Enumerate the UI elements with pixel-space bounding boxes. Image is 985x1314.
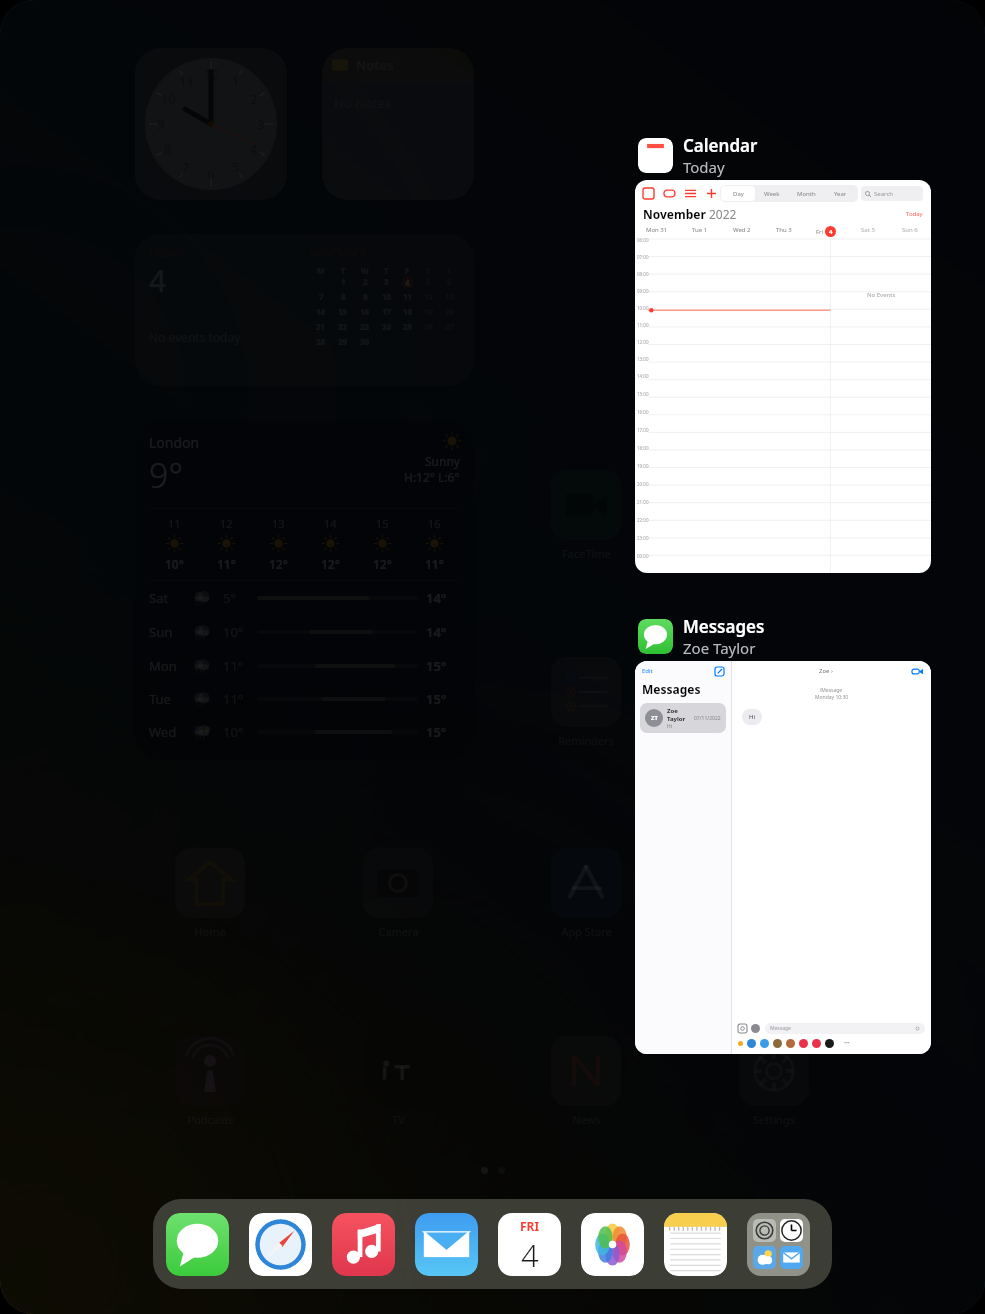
staticText: 10° <box>223 623 257 641</box>
staticText: 14 <box>316 306 326 317</box>
button[interactable]: Music <box>332 1213 395 1276</box>
staticText: 10:00 <box>637 305 649 311</box>
staticText: 13 <box>272 516 285 531</box>
staticText: 20:00 <box>637 481 649 487</box>
button[interactable]: iMessage app 4 <box>786 1039 795 1048</box>
staticText: London <box>149 433 200 452</box>
staticText: 18:00 <box>637 445 649 451</box>
button[interactable]: Day <box>721 186 755 201</box>
staticText: Sun <box>149 623 191 641</box>
button[interactable]: Notes <box>664 1213 727 1276</box>
button[interactable]: Photos <box>581 1213 644 1276</box>
staticText: Messages <box>642 681 701 697</box>
staticText: 14:00 <box>637 373 649 379</box>
staticText: 16 <box>360 306 370 317</box>
button[interactable]: iMessage app 7 <box>825 1039 834 1048</box>
staticText: App Store <box>561 924 612 939</box>
button[interactable]: Edit <box>635 661 931 1054</box>
staticText: 30 <box>360 336 370 347</box>
staticText: T <box>341 265 346 276</box>
staticText: 11° <box>223 657 257 675</box>
staticText: Tue <box>149 690 191 708</box>
staticText: 5° <box>223 589 257 607</box>
staticText: Year <box>834 190 847 198</box>
button[interactable]: iMessage app 6 <box>812 1039 821 1048</box>
staticText: 1 <box>341 276 346 287</box>
button[interactable]: Messages <box>638 615 765 658</box>
staticText: Sat 5 <box>861 226 875 234</box>
staticText: Messages <box>683 615 765 638</box>
staticText: Thu 3 <box>776 226 792 234</box>
button[interactable]: Month <box>789 186 823 201</box>
staticText: Hi <box>749 713 755 721</box>
button[interactable]: Mail <box>415 1213 478 1276</box>
staticText: Day <box>733 190 744 198</box>
button[interactable]: Messages <box>166 1213 229 1276</box>
staticText: 17:00 <box>637 427 649 433</box>
button[interactable]: Year <box>823 186 857 201</box>
staticText: F <box>405 265 410 276</box>
button[interactable]: Settings <box>739 1036 809 1127</box>
staticText: 29 <box>338 336 348 347</box>
staticText: Search <box>874 190 893 198</box>
staticText: 12:00 <box>637 339 649 345</box>
staticText: 07:00 <box>637 254 649 260</box>
staticText: 17 <box>382 306 392 317</box>
button[interactable]: Calendar <box>498 1213 561 1276</box>
button[interactable]: London <box>135 421 474 760</box>
button[interactable]: iMessage app 2 <box>760 1039 769 1048</box>
button[interactable]: iMessage app 5 <box>799 1039 808 1048</box>
button[interactable]: Utilities folder <box>747 1213 810 1276</box>
button[interactable]: iMessage app 0 <box>738 1041 743 1046</box>
staticText: Edit <box>642 667 653 675</box>
staticText: Wed 2 <box>733 226 751 234</box>
staticText: 22:00 <box>637 517 649 523</box>
button[interactable]: App Store <box>551 848 621 939</box>
staticText: 9° <box>149 452 183 498</box>
staticText: 4 <box>405 277 410 288</box>
staticText: 28 <box>316 336 326 347</box>
staticText: 15:00 <box>637 391 649 397</box>
button[interactable]: ZT <box>640 703 726 733</box>
staticText: November <box>643 206 709 222</box>
staticText: FRI <box>520 1218 540 1234</box>
button[interactable]: Clock widget <box>135 48 287 200</box>
staticText: 06:00 <box>637 237 649 243</box>
button[interactable]: Day <box>635 180 931 573</box>
staticText: Sunny <box>425 453 460 469</box>
button[interactable]: Safari <box>249 1213 312 1276</box>
button[interactable]: Podcasts <box>175 1036 245 1127</box>
button[interactable]: Calendar <box>638 134 758 177</box>
staticText: Fri <box>816 228 825 236</box>
button[interactable]: iMessage app 1 <box>747 1039 756 1048</box>
staticText: News <box>572 1112 601 1127</box>
staticText: 16 <box>428 516 441 531</box>
button[interactable]: News <box>551 1036 621 1127</box>
staticText: 7 <box>319 291 324 302</box>
staticText: iMessage <box>820 687 843 694</box>
staticText: 08:00 <box>637 271 649 277</box>
button[interactable]: Week <box>755 186 789 201</box>
staticText: 14 <box>324 516 337 531</box>
staticText: 12° <box>269 556 288 572</box>
staticText: 11 <box>168 516 181 531</box>
button[interactable]: iMessage app 3 <box>773 1039 782 1048</box>
staticText: Week <box>764 190 780 198</box>
staticText: ZT <box>651 714 658 722</box>
staticText: 14° <box>426 623 460 641</box>
